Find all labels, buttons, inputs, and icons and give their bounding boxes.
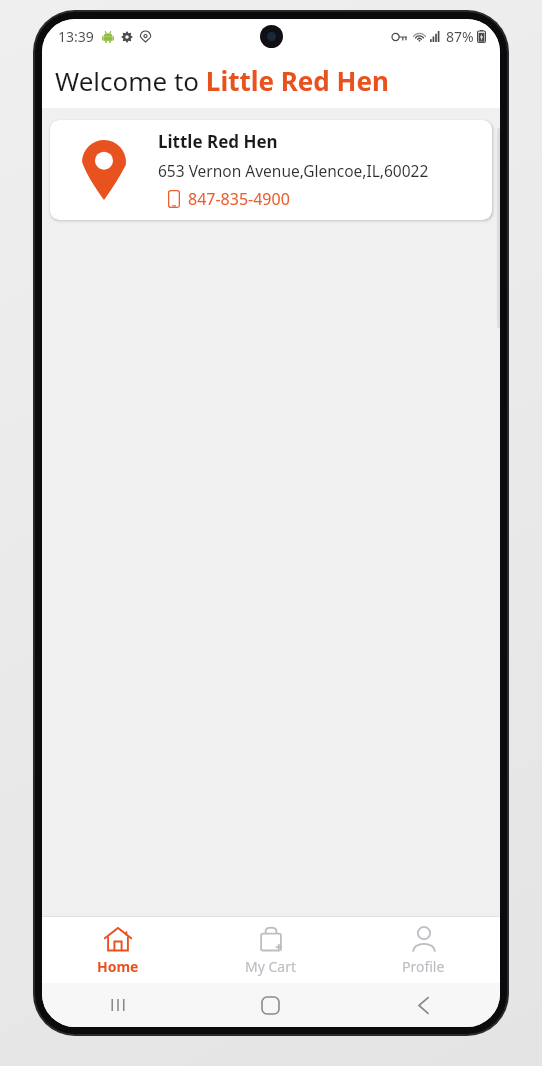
staticText: Little Red Hen <box>158 130 278 153</box>
button[interactable]: My Cart <box>194 917 347 983</box>
staticText: My Cart <box>245 957 297 976</box>
staticText: 653 Vernon Avenue,Glencoe,IL,60022 <box>158 160 429 181</box>
staticText: Home <box>97 957 139 976</box>
staticText: Profile <box>402 957 445 976</box>
staticText: 13:39 <box>58 27 94 46</box>
button[interactable]: Recent apps <box>42 983 194 1027</box>
button[interactable]: Home <box>42 917 194 983</box>
staticText: Welcome to Little Red Hen <box>55 63 389 98</box>
staticText: 847-835-4900 <box>188 188 290 210</box>
staticText: 87% <box>446 27 474 46</box>
button[interactable]: Profile <box>347 917 500 983</box>
button[interactable]: Home <box>194 983 347 1027</box>
button[interactable]: Back <box>347 983 500 1027</box>
button[interactable]: 847-835-4900 <box>168 188 290 210</box>
button[interactable]: Little Red Hen <box>50 120 492 220</box>
